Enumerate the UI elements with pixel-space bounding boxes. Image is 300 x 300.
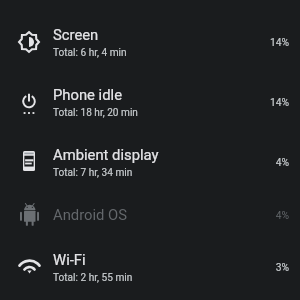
staticText: 14% — [269, 96, 289, 108]
staticText: Wi-Fi — [53, 251, 86, 268]
staticText: Total: 2 hr, 55 min — [53, 272, 133, 284]
staticText: Total: 6 hr, 4 min — [53, 47, 127, 59]
button[interactable]: Wi-Fi — [0, 236, 300, 296]
staticText: 4% — [275, 209, 289, 221]
button[interactable]: Phone idle — [0, 71, 300, 131]
staticText: 3% — [275, 261, 289, 273]
staticText: Ambient display — [53, 146, 159, 163]
staticText: Total: 18 hr, 20 min — [53, 107, 138, 119]
button[interactable]: Ambient display — [0, 131, 300, 191]
staticText: 4% — [275, 156, 289, 168]
staticText: Android OS — [53, 206, 128, 223]
staticText: Screen — [53, 26, 99, 43]
staticText: Total: 7 hr, 34 min — [53, 167, 133, 179]
button[interactable]: Android OS — [0, 191, 300, 236]
staticText: Phone idle — [53, 86, 122, 103]
button[interactable]: Screen — [0, 11, 300, 71]
staticText: 14% — [269, 36, 289, 48]
